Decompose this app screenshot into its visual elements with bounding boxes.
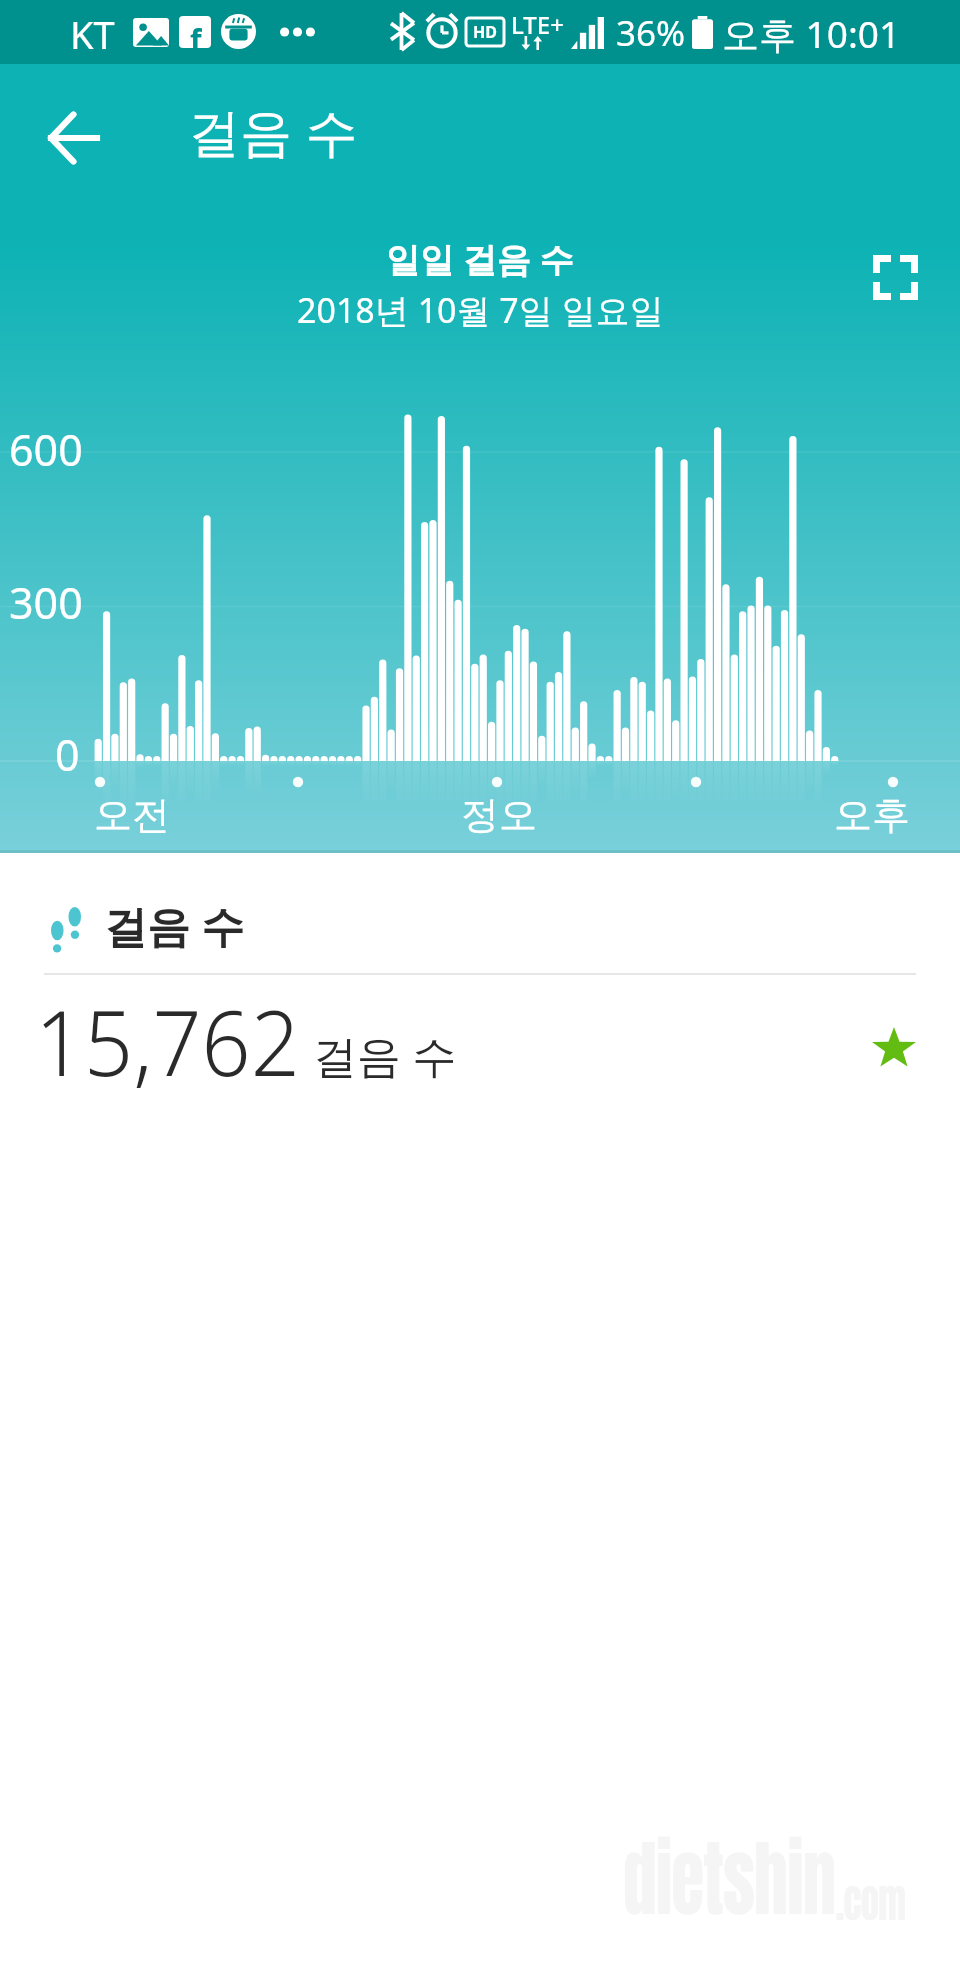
staticText: HD	[473, 21, 497, 43]
staticText: 36%	[616, 9, 686, 57]
staticText: 0	[55, 725, 80, 784]
staticText: 15,762	[35, 980, 300, 1103]
staticText: 오전	[94, 791, 170, 839]
staticText: f	[190, 19, 202, 51]
button[interactable]: Fullscreen	[851, 233, 939, 321]
staticText: 정오	[461, 791, 537, 839]
button[interactable]: Favorite	[853, 1006, 934, 1087]
staticText: dietshin	[623, 1815, 836, 1941]
staticText: 오후 10:01	[722, 8, 901, 59]
staticText: 일일 걸음 수	[386, 236, 574, 282]
staticText: .com	[836, 1866, 905, 1935]
staticText: 오후	[834, 791, 910, 839]
staticText: 600	[9, 420, 83, 479]
staticText: LTE+	[511, 8, 564, 41]
staticText: 2018년 10월 7일 일요일	[297, 287, 664, 333]
staticText: 300	[9, 573, 83, 632]
staticText: 걸음 수	[188, 95, 358, 166]
staticText: 걸음 수	[313, 1025, 457, 1085]
staticText: KT	[70, 8, 115, 60]
button[interactable]: Back	[28, 94, 116, 182]
staticText: 걸음 수	[104, 896, 245, 955]
